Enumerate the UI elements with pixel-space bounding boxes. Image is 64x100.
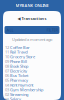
staticText: Rail Travel xyxy=(10,49,28,55)
staticText: 05 xyxy=(5,78,9,83)
button[interactable]: 02 xyxy=(3,92,61,97)
staticText: 09 xyxy=(5,59,9,64)
button[interactable]: 09 xyxy=(3,59,61,64)
staticText: Updated a moment ago xyxy=(12,37,52,42)
button[interactable]: FILTER xyxy=(46,27,57,33)
staticText: 12 xyxy=(5,45,9,50)
staticText: Transactions xyxy=(21,16,46,21)
staticText: 04 xyxy=(5,82,9,88)
staticText: ALL xyxy=(6,27,13,33)
button[interactable]: 04 xyxy=(3,83,61,87)
staticText: 10 xyxy=(5,54,9,59)
staticText: Streaming xyxy=(10,92,28,97)
staticText: Salary xyxy=(10,96,21,100)
button[interactable]: 12 xyxy=(3,45,61,50)
staticText: Coffee Bar xyxy=(10,45,30,50)
button[interactable]: 10 xyxy=(3,54,61,59)
staticText: 11 xyxy=(5,49,9,55)
button[interactable]: 06 xyxy=(3,73,61,78)
staticText: 06 xyxy=(5,73,9,78)
staticText: 08 xyxy=(5,63,9,69)
button[interactable]: 11 xyxy=(3,50,61,54)
staticText: ◀ xyxy=(17,16,20,21)
staticText: Book Shop xyxy=(10,63,28,69)
button[interactable]: ALL xyxy=(6,27,13,33)
button[interactable]: 07 xyxy=(3,68,61,73)
staticText: Phone Bill xyxy=(10,59,27,64)
staticText: 02 xyxy=(5,92,9,97)
staticText: MYBANK ONLINE xyxy=(15,3,48,8)
button[interactable]: 05 xyxy=(3,78,61,83)
staticText: Rent Payment xyxy=(10,82,33,88)
staticText: Electricity xyxy=(10,68,27,73)
staticText: Bus Ticket xyxy=(10,73,28,78)
button[interactable]: Back xyxy=(17,16,21,21)
staticText: Gym Membership xyxy=(10,87,43,92)
staticText: 03 xyxy=(5,87,9,92)
staticText: 01 xyxy=(5,96,9,100)
staticText: FILTER xyxy=(46,27,57,33)
staticText: 07 xyxy=(5,68,9,73)
button[interactable]: 03 xyxy=(3,87,61,92)
button[interactable]: 01 xyxy=(3,97,61,100)
staticText: Grocery Store xyxy=(10,54,35,59)
button[interactable]: 08 xyxy=(3,64,61,68)
staticText: Pharmacy xyxy=(10,78,28,83)
